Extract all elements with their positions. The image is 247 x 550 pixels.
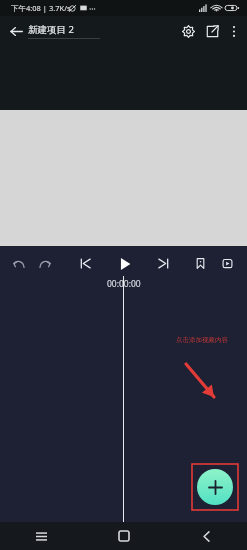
button[interactable]: Settings [176, 19, 200, 43]
button[interactable]: Skip to end [150, 251, 177, 276]
button[interactable]: Redo [32, 251, 58, 276]
button[interactable]: Loop [214, 251, 241, 276]
button[interactable]: Back [165, 522, 247, 550]
button[interactable]: Recent apps [0, 522, 83, 550]
staticText: 新建项目 2 [28, 23, 74, 36]
button[interactable]: Add marker [187, 251, 214, 276]
staticText: 下午4:08 | 3.7K/s [11, 3, 71, 13]
button[interactable]: More options [224, 21, 244, 41]
button[interactable]: Undo [6, 251, 32, 276]
button[interactable]: 新建项目 2 [28, 23, 100, 39]
button[interactable]: Skip to start [72, 251, 99, 276]
staticText: 点击添加视频内容 [176, 336, 228, 344]
staticText: 00:00:00 [107, 278, 141, 290]
button[interactable]: Play [111, 251, 138, 276]
button[interactable]: Add media [192, 464, 238, 510]
button[interactable]: Back [4, 19, 28, 43]
button[interactable]: Export [200, 19, 224, 43]
button[interactable]: Home [83, 522, 165, 550]
